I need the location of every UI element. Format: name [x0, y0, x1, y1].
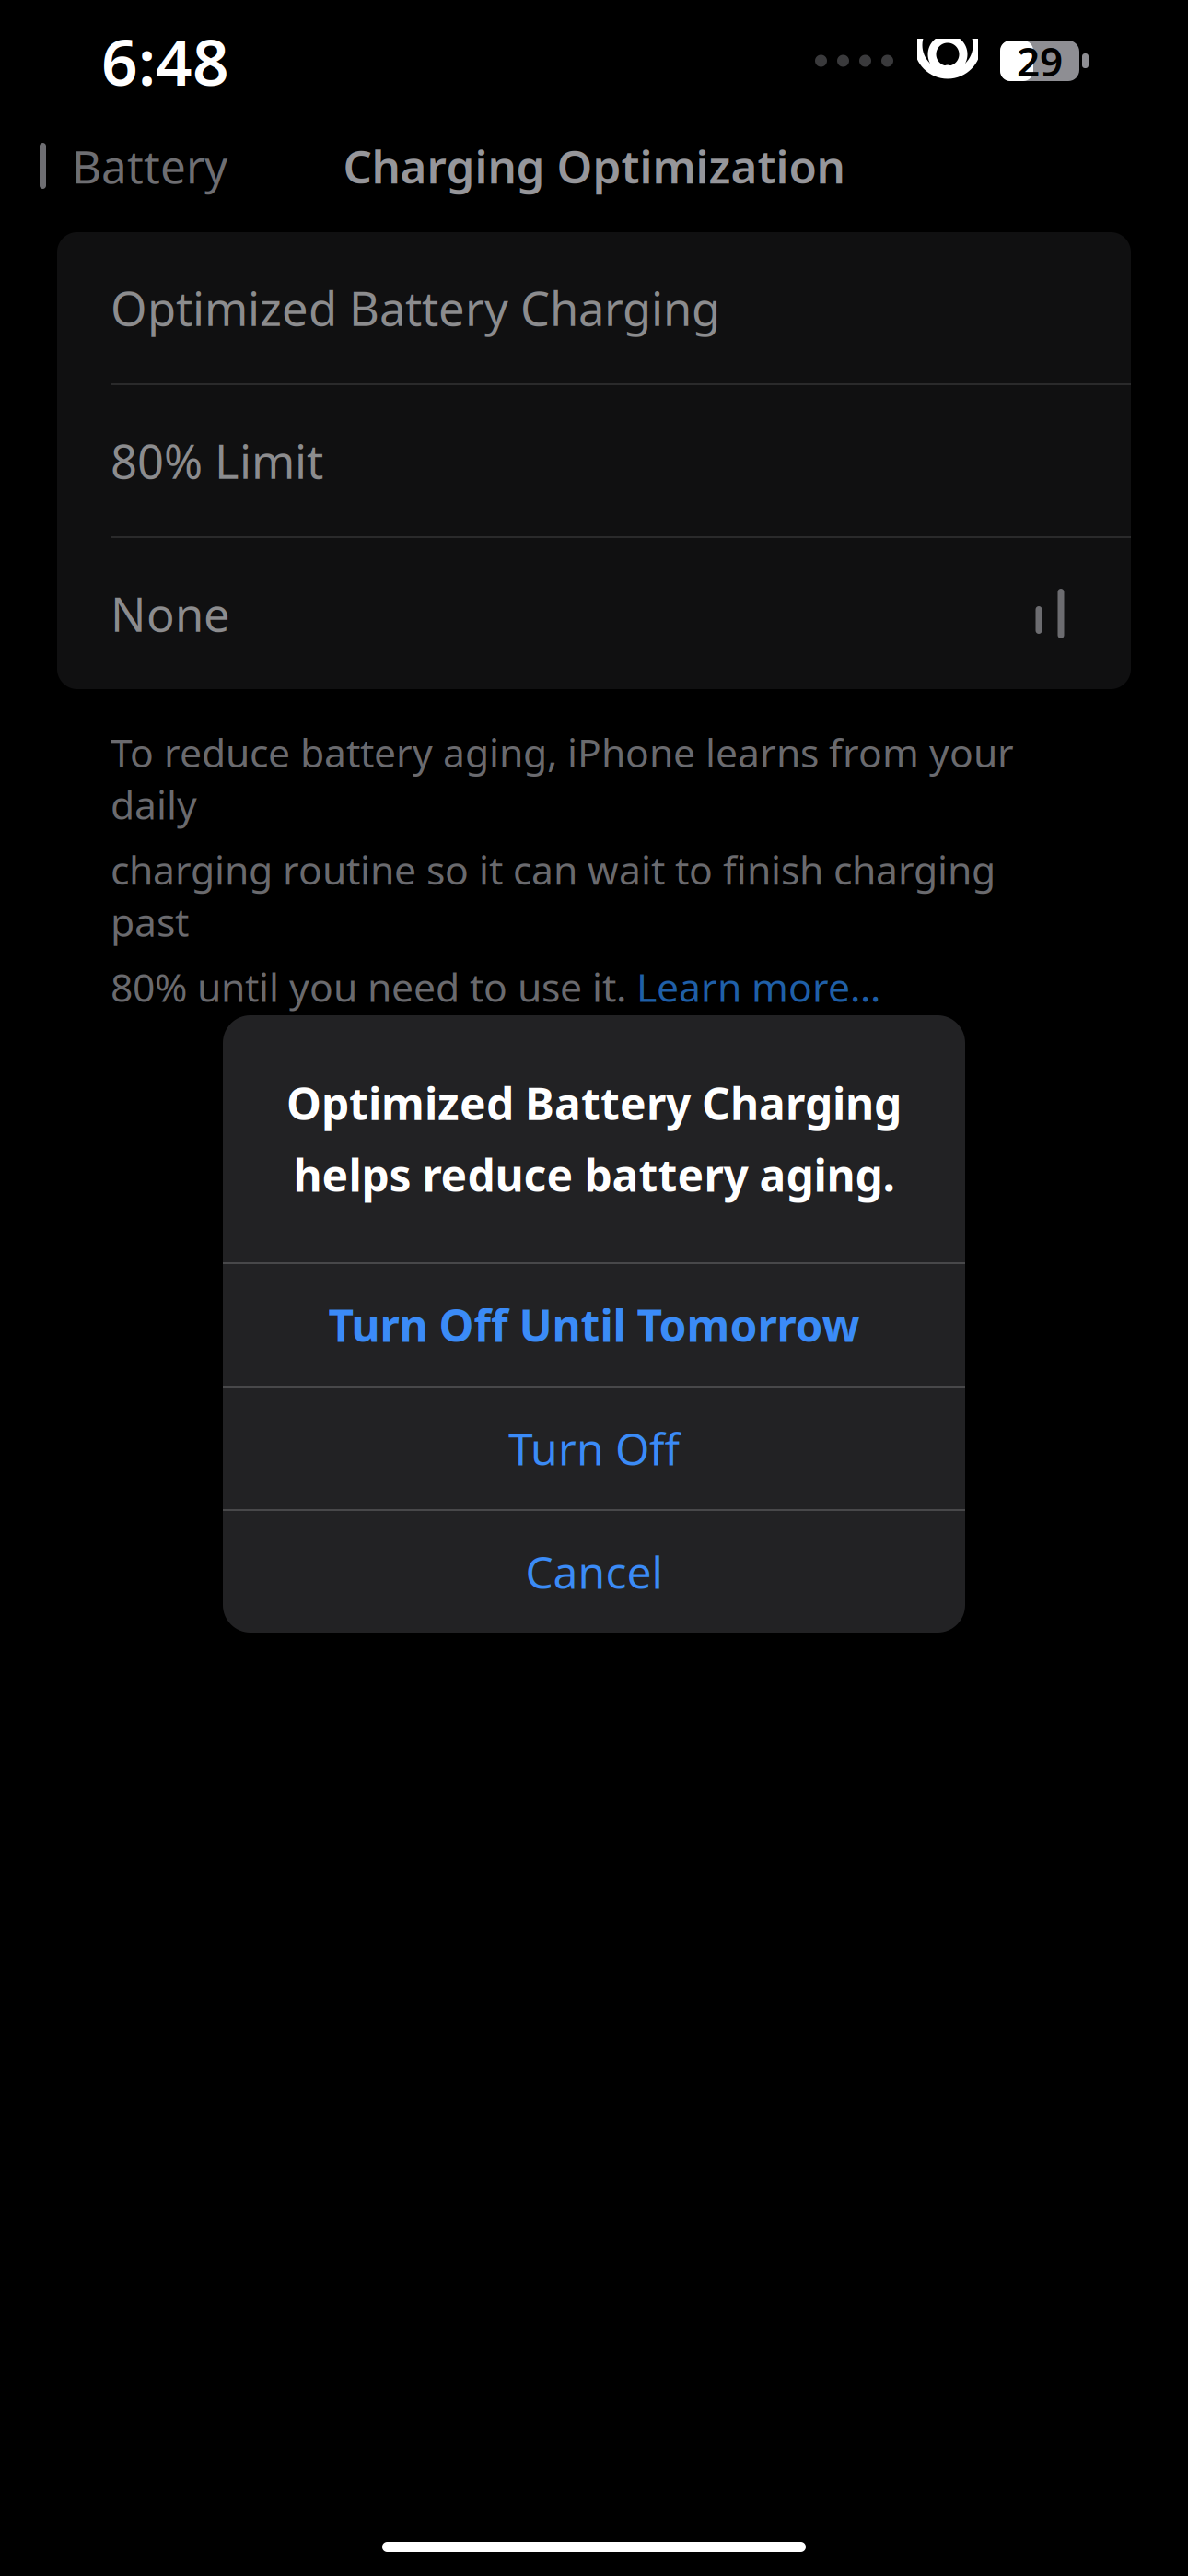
staticText: None — [111, 583, 230, 645]
staticText: Optimized Battery Charging — [286, 1074, 902, 1132]
staticText: Turn Off — [508, 1419, 680, 1478]
staticText: Learn more... — [636, 961, 880, 1013]
button[interactable]: Optimized Battery Charging — [57, 232, 1131, 383]
staticText: charging routine so it can wait to finis… — [111, 843, 996, 948]
staticText: Turn Off Until Tomorrow — [328, 1295, 860, 1354]
button[interactable]: Learn more... — [636, 961, 880, 1013]
staticText: To reduce battery aging, iPhone learns f… — [111, 726, 1014, 830]
button[interactable]: Turn Off Until Tomorrow — [223, 1264, 965, 1386]
staticText: 29 — [1017, 34, 1063, 88]
staticText: 80% Limit — [111, 430, 323, 492]
button[interactable]: Battery — [0, 119, 227, 213]
staticText: 80% until you need to use it. — [111, 961, 636, 1013]
staticText: Battery — [72, 136, 227, 196]
staticText: Optimized Battery Charging — [111, 277, 720, 339]
button[interactable]: Turn Off — [223, 1388, 965, 1509]
button[interactable]: Cancel — [223, 1511, 965, 1633]
staticText: 6:48 — [101, 18, 229, 103]
staticText: Cancel — [525, 1542, 663, 1601]
staticText: Charging Optimization — [343, 136, 845, 196]
button[interactable]: 80% Limit — [57, 385, 1131, 536]
button[interactable]: None — [57, 538, 1131, 689]
staticText: helps reduce battery aging. — [293, 1145, 895, 1204]
